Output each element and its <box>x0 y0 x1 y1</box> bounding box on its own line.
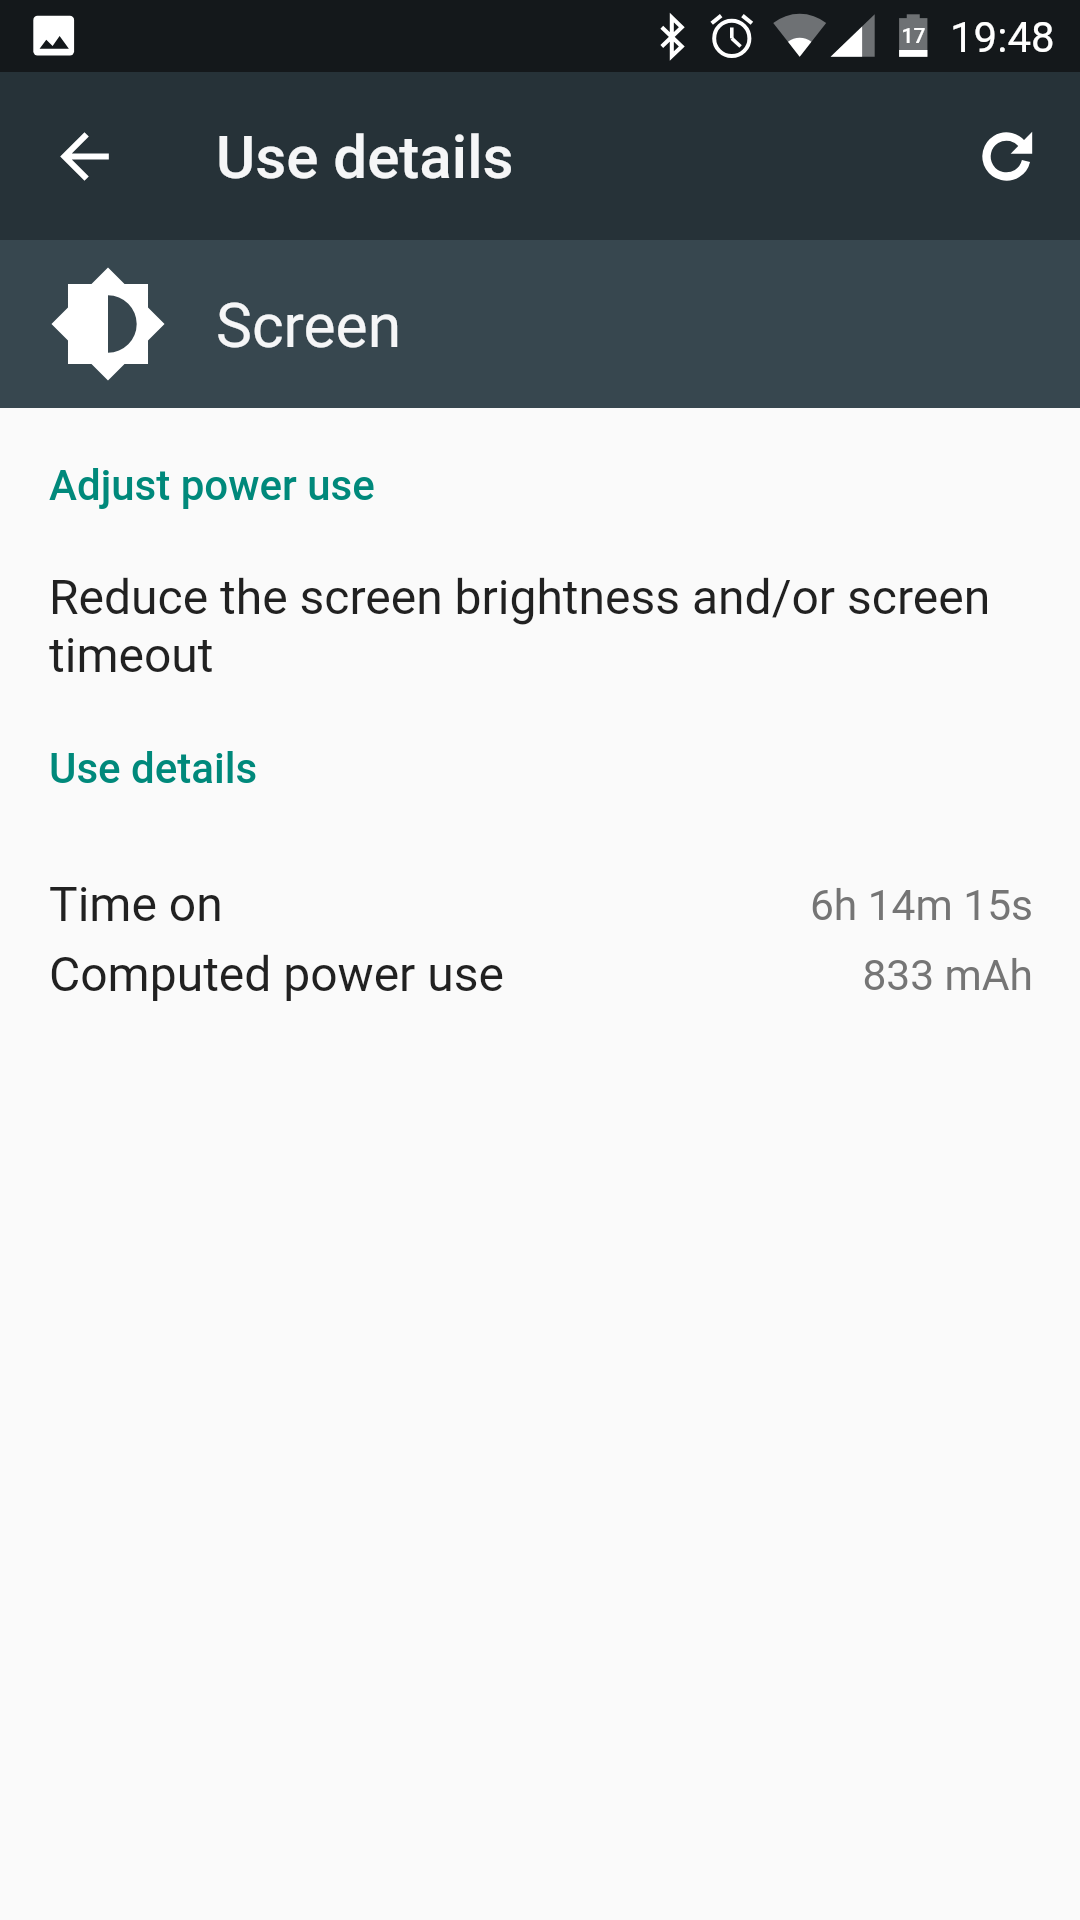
button[interactable]: Navigate up <box>24 96 144 216</box>
button[interactable]: Time on <box>0 869 1080 939</box>
button[interactable]: Refresh <box>946 96 1066 216</box>
staticText: 6h 14m 15s <box>809 881 1033 931</box>
staticText: Use details <box>49 744 258 793</box>
staticText: 19:48 <box>950 13 1055 62</box>
staticText: 17 <box>899 24 928 49</box>
staticText: Use details <box>216 122 514 192</box>
button[interactable]: Computed power use <box>0 939 1080 1009</box>
staticText: 833 mAh <box>862 951 1033 1001</box>
staticText: Computed power use <box>49 946 504 1002</box>
staticText: Time on <box>49 876 223 932</box>
button[interactable]: Adjust power use <box>0 408 1080 683</box>
staticText: Reduce the screen brightness and/or scre… <box>49 569 991 683</box>
staticText: Screen <box>216 291 402 362</box>
staticText: Adjust power use <box>49 461 375 510</box>
